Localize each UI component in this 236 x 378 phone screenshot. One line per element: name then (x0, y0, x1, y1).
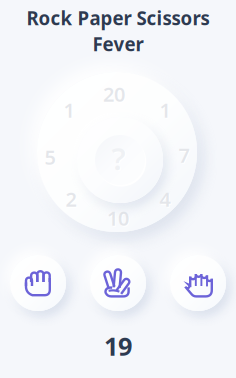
staticText: 2 (66, 187, 77, 213)
button[interactable]: Rock (2, 247, 74, 319)
staticText: 1 (159, 97, 170, 123)
staticText: Fever (92, 31, 143, 56)
staticText: 2 (65, 186, 76, 212)
staticText: 5 (44, 144, 55, 170)
staticText: 20 (104, 82, 126, 108)
staticText: Rock Paper Scissors (26, 6, 209, 30)
staticText: 4 (159, 186, 170, 212)
staticText: 1 (160, 98, 171, 124)
button[interactable]: Scissors (82, 247, 154, 319)
staticText: 10 (108, 206, 130, 232)
staticText: 1 (63, 97, 74, 123)
staticText: 7 (179, 143, 190, 169)
staticText: 7 (178, 142, 189, 168)
staticText: 5 (45, 145, 56, 171)
button[interactable]: Paper (162, 247, 234, 319)
staticText: 20 (103, 81, 125, 107)
staticText: 1 (64, 98, 75, 124)
staticText: 19 (104, 329, 132, 363)
staticText: 10 (107, 205, 129, 231)
staticText: 4 (160, 187, 171, 213)
staticText: ? (112, 138, 126, 179)
staticText: ? (112, 139, 126, 179)
